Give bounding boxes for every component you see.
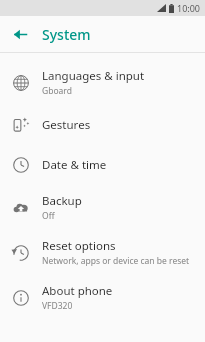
staticText: System [42,25,91,44]
staticText: 10:00 [177,2,201,14]
button[interactable]: Backup [0,185,205,230]
staticText: Network, apps or device can be reset [42,255,190,267]
button[interactable]: Date & time [0,145,205,185]
staticText: Date & time [42,157,107,173]
staticText: VFD320 [42,300,73,312]
staticText: Backup [42,193,82,209]
button[interactable]: Gestures [0,105,205,145]
staticText: About phone [42,283,113,299]
staticText: Gboard [42,85,72,97]
button[interactable]: Languages & input [0,60,205,105]
staticText: Off [42,210,55,222]
staticText: Reset options [42,238,116,254]
staticText: Gestures [42,117,91,133]
button[interactable]: Back [6,20,34,48]
button[interactable]: Reset options [0,230,205,275]
staticText: Languages & input [42,68,145,84]
button[interactable]: About phone [0,275,205,320]
